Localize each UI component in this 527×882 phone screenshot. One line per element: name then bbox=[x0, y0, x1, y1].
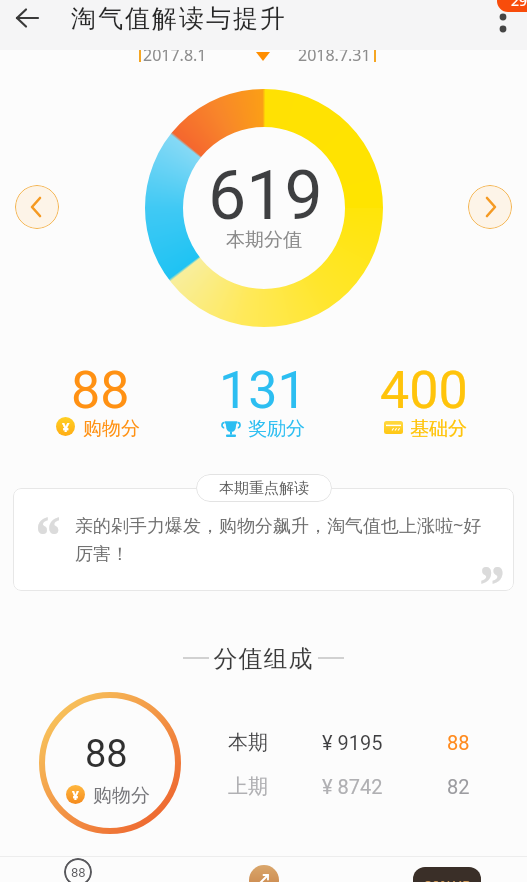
staticText: 奖励分 bbox=[248, 417, 305, 439]
staticText: 基础分 bbox=[410, 417, 467, 439]
staticText: 82 bbox=[447, 775, 470, 798]
button[interactable] bbox=[488, 0, 520, 44]
staticText: 29 bbox=[511, 0, 527, 10]
staticText: ¥ bbox=[72, 787, 79, 803]
button[interactable] bbox=[15, 185, 59, 229]
staticText: ” bbox=[479, 548, 506, 592]
staticText: 88 bbox=[85, 732, 128, 777]
staticText: “ bbox=[35, 498, 62, 542]
staticText: 亲的剁手力爆发，购物分飙升，淘气值也上涨啦~好厉害！ bbox=[75, 513, 493, 565]
staticText: 400 bbox=[380, 360, 468, 416]
staticText: 619 bbox=[208, 156, 323, 228]
staticText: 2017.8.1 bbox=[143, 44, 207, 64]
staticText: 上期 bbox=[228, 774, 268, 798]
staticText: 本期 bbox=[228, 730, 268, 754]
button[interactable] bbox=[249, 865, 279, 882]
staticText: 2018.7.31 bbox=[298, 44, 371, 64]
staticText: 131 bbox=[219, 360, 307, 416]
button[interactable] bbox=[468, 185, 512, 229]
staticText: 88 bbox=[447, 731, 470, 754]
staticText: 淘气值解读与提升 bbox=[70, 3, 286, 34]
staticText: ¥ bbox=[62, 418, 70, 436]
staticText: ¥ 9195 bbox=[322, 731, 383, 754]
button[interactable] bbox=[12, 2, 46, 34]
staticText: 80%UP bbox=[424, 876, 471, 882]
staticText: 88 bbox=[71, 865, 86, 880]
staticText: 购物分 bbox=[83, 417, 140, 439]
staticText: 购物分 bbox=[93, 784, 150, 806]
staticText: 分值组成 bbox=[213, 644, 313, 671]
staticText: 本期重点解读 bbox=[219, 479, 309, 498]
button[interactable]: 88 bbox=[64, 858, 92, 882]
staticText: 本期分值 bbox=[226, 228, 302, 252]
staticText: 88 bbox=[71, 360, 130, 416]
staticText: ¥ 8742 bbox=[322, 775, 383, 798]
button[interactable]: 80%UP bbox=[413, 867, 481, 882]
